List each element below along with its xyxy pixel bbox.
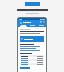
button[interactable]: [20, 61, 44, 63]
button[interactable]: [20, 50, 44, 51]
button[interactable]: [37, 24, 46, 27]
button[interactable]: [20, 57, 44, 59]
button[interactable]: [28, 24, 37, 27]
button[interactable]: [18, 24, 28, 27]
button[interactable]: [20, 48, 44, 49]
button[interactable]: [20, 63, 44, 65]
button[interactable]: Menu: [19, 21, 22, 24]
button[interactable]: [20, 46, 44, 47]
button[interactable]: Menu: [18, 20, 46, 24]
button[interactable]: [20, 36, 44, 42]
button[interactable]: [20, 55, 44, 57]
button[interactable]: Search: [40, 21, 42, 23]
button[interactable]: [20, 59, 44, 61]
